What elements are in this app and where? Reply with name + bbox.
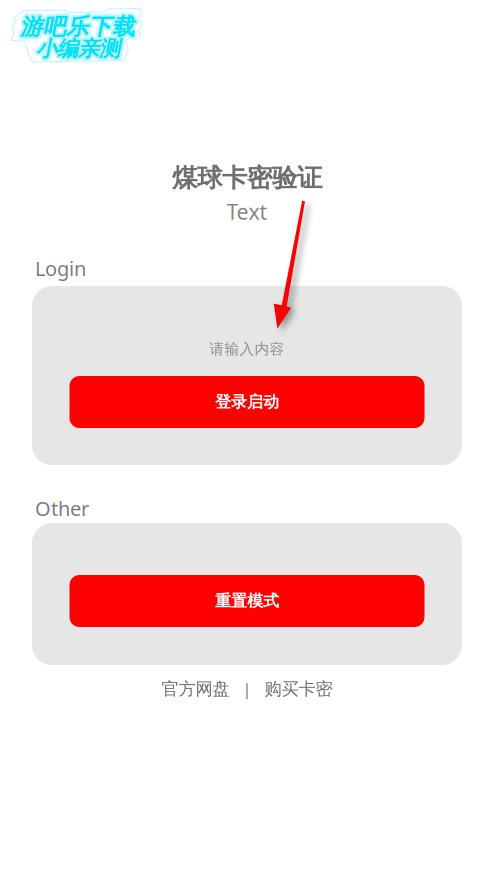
staticText: 游吧乐下载 xyxy=(20,15,135,43)
staticText: 请输入内容 xyxy=(209,340,284,358)
staticText: 官方网盘 xyxy=(161,678,229,700)
staticText: 小编亲测 xyxy=(38,36,122,62)
staticText: 重置模式 xyxy=(215,591,279,611)
staticText: 游吧乐下载 xyxy=(20,13,135,41)
staticText: 小编亲测 xyxy=(36,36,120,62)
staticText: 游吧乐下载 xyxy=(22,15,137,42)
staticText: 游吧乐下载 xyxy=(18,15,133,42)
button[interactable]: 登录启动 xyxy=(69,376,424,428)
staticText: 小编亲测 xyxy=(38,37,122,64)
button[interactable]: 购买卡密 xyxy=(259,675,337,703)
staticText: 游吧乐下载 xyxy=(22,13,137,41)
button[interactable]: 重置模式 xyxy=(69,575,424,627)
staticText: Text xyxy=(226,197,267,226)
staticText: 游吧乐下载 xyxy=(18,13,133,41)
staticText: 小编亲测 xyxy=(34,37,118,64)
staticText: 小编亲测 xyxy=(34,36,118,62)
staticText: 游吧乐下载 xyxy=(22,11,137,39)
staticText: 小编亲测 xyxy=(38,34,122,60)
staticText: 煤球卡密验证 xyxy=(172,162,322,193)
staticText: 购买卡密 xyxy=(264,678,332,700)
button[interactable]: 官方网盘 xyxy=(156,675,234,703)
staticText: 登录启动 xyxy=(215,392,279,412)
staticText: 小编亲测 xyxy=(36,38,120,64)
staticText: 小编亲测 xyxy=(34,34,118,60)
staticText: Login xyxy=(35,255,86,282)
staticText: | xyxy=(242,678,251,700)
staticText: 游吧乐下载 xyxy=(18,11,133,39)
staticText: Other xyxy=(35,495,89,522)
staticText: 游吧乐下载 xyxy=(20,11,135,39)
staticText: 小编亲测 xyxy=(36,34,120,60)
